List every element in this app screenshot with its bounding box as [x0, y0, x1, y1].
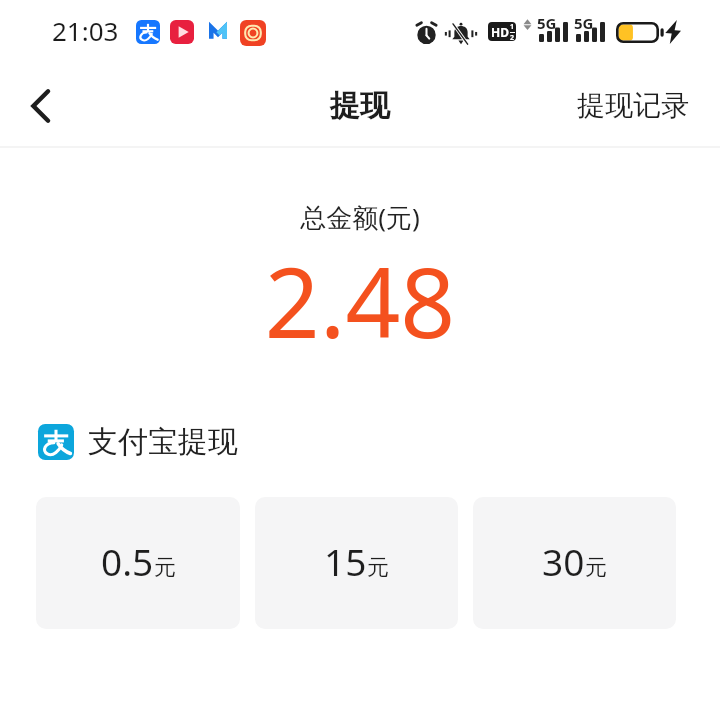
staticText: 总金额(元)	[0, 199, 720, 235]
staticText: 元	[367, 554, 389, 582]
staticText: 提现记录	[577, 88, 689, 123]
staticText: HD	[491, 24, 509, 40]
staticText: 元	[154, 554, 176, 582]
button[interactable]: 提现记录	[577, 88, 689, 123]
button[interactable]: 15	[255, 497, 458, 629]
staticText: 15	[324, 536, 367, 586]
staticText: 元	[585, 554, 607, 582]
staticText: 支付宝提现	[88, 423, 238, 461]
staticText: 提现	[330, 87, 390, 125]
staticText: 21:03	[52, 13, 119, 48]
staticText: 5G	[574, 13, 594, 33]
staticText: 5G	[537, 13, 557, 33]
button[interactable]: 0.5	[36, 497, 240, 629]
button[interactable]: 30	[473, 497, 676, 629]
staticText: 2.48	[0, 235, 720, 366]
staticText: 30	[542, 536, 585, 586]
button[interactable]: Back	[8, 74, 72, 138]
staticText: 0.5	[101, 536, 154, 586]
staticText: 2	[510, 33, 515, 41]
staticText: 1	[510, 22, 515, 32]
